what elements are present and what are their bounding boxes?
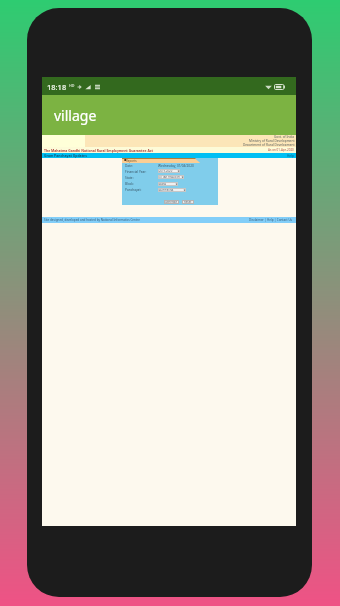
button[interactable]: Generate <box>164 200 179 204</box>
staticText: 2019-2020 <box>159 169 173 173</box>
staticText: As on 01-Apr-2020 <box>268 148 294 152</box>
button[interactable]: AGRA <box>158 182 178 186</box>
button[interactable]: 2019-2020 <box>158 169 180 173</box>
staticText: Panchayat: <box>125 188 142 192</box>
staticText: ACHHNERA <box>159 188 174 192</box>
staticText: Help <box>287 154 294 158</box>
staticText: Govt. of India <box>274 135 295 139</box>
staticText: AGRA <box>159 182 167 186</box>
staticText: Reset <box>184 200 192 204</box>
button[interactable]: UTTAR PRADESH <box>158 175 184 179</box>
staticText: Financial Year: <box>125 170 147 174</box>
staticText: Ministry of Rural Development <box>249 139 295 143</box>
button[interactable]: Gram Panchayat Updates <box>42 153 296 158</box>
staticText: The Mahatma Gandhi National Rural Employ… <box>44 148 154 153</box>
staticText: Department of Rural Development <box>243 143 295 146</box>
button[interactable]: ACHHNERA <box>158 188 186 192</box>
staticText: Disclaimer | Help | Contact Us <box>249 218 293 222</box>
staticText: 18:18 <box>47 82 67 92</box>
staticText: HD <box>69 83 75 88</box>
staticText: Gram Panchayat Updates <box>44 153 87 158</box>
staticText: Site designed, developed and hosted by N… <box>44 218 140 222</box>
staticText: UTTAR PRADESH <box>159 175 180 179</box>
button[interactable]: Site designed, developed and hosted by N… <box>42 217 296 223</box>
button[interactable]: village <box>42 95 296 135</box>
staticText: Reports <box>126 159 137 163</box>
staticText: Date: <box>125 164 133 168</box>
staticText: Generate <box>165 200 178 204</box>
staticText: village <box>54 106 97 125</box>
button[interactable]: Reset <box>182 200 194 204</box>
staticText: Wednesday, 01/04/2020 <box>158 164 194 168</box>
staticText: Block: <box>125 182 134 186</box>
staticText: State: <box>125 176 134 180</box>
